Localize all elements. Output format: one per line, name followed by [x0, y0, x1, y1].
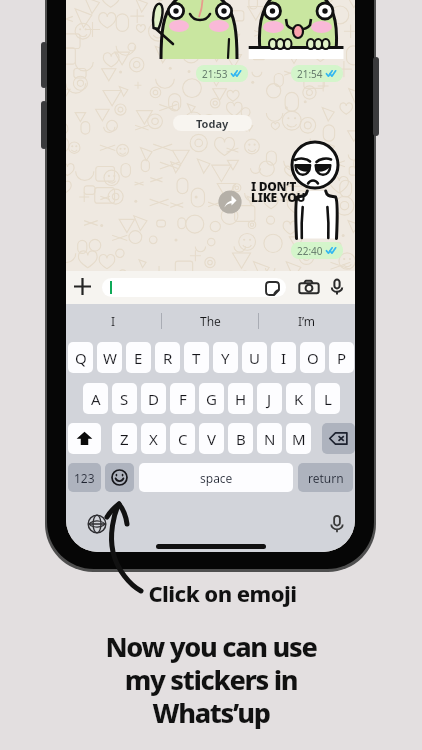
staticText: S: [120, 389, 129, 409]
button[interactable]: H: [228, 383, 253, 414]
staticText: 21:54: [297, 67, 323, 81]
button[interactable]: return: [298, 463, 353, 492]
button[interactable]: M: [286, 423, 311, 454]
button[interactable]: W: [97, 342, 122, 373]
staticText: K: [294, 389, 304, 409]
staticText: P: [337, 348, 347, 368]
button[interactable]: Q: [68, 342, 93, 373]
staticText: F: [179, 389, 187, 409]
staticText: I: [111, 313, 116, 329]
button[interactable]: N: [257, 423, 282, 454]
staticText: The: [200, 313, 221, 329]
button[interactable]: space: [139, 463, 293, 492]
button[interactable]: Voice message: [327, 277, 347, 297]
staticText: I: [281, 348, 287, 368]
staticText: return: [308, 470, 344, 486]
button[interactable]: T: [184, 342, 209, 373]
staticText: L: [324, 389, 332, 409]
button[interactable]: Y: [213, 342, 238, 373]
button[interactable]: X: [141, 423, 166, 454]
staticText: V: [207, 429, 217, 449]
staticText: 22:40: [297, 244, 323, 258]
button[interactable]: D: [141, 383, 166, 414]
staticText: Y: [221, 348, 230, 368]
staticText: space: [200, 470, 233, 486]
staticText: D: [148, 389, 159, 409]
button[interactable]: C: [170, 423, 195, 454]
button[interactable]: P: [329, 342, 354, 373]
button[interactable]: Stickers: [102, 278, 286, 297]
button[interactable]: Stickers: [264, 280, 281, 297]
staticText: I’m: [298, 313, 316, 329]
button[interactable]: E: [126, 342, 151, 373]
staticText: T: [192, 348, 201, 368]
staticText: 123: [74, 470, 95, 486]
button[interactable]: K: [286, 383, 311, 414]
staticText: C: [178, 429, 188, 449]
staticText: B: [236, 429, 246, 449]
staticText: W: [103, 348, 117, 368]
button[interactable]: I: [271, 342, 296, 373]
button[interactable]: I’m: [259, 304, 355, 338]
button[interactable]: G: [199, 383, 224, 414]
staticText: A: [91, 389, 101, 409]
button[interactable]: S: [112, 383, 137, 414]
button[interactable]: V: [199, 423, 224, 454]
staticText: 21:53: [202, 67, 228, 81]
staticText: G: [206, 389, 217, 409]
button[interactable]: A: [83, 383, 108, 414]
button[interactable]: R: [155, 342, 180, 373]
staticText: U: [249, 348, 260, 368]
button[interactable]: B: [228, 423, 253, 454]
button[interactable]: Attach: [69, 273, 95, 299]
staticText: X: [149, 429, 158, 449]
button[interactable]: 123: [68, 463, 101, 492]
staticText: Today: [196, 116, 229, 131]
button[interactable]: Change keyboard language: [86, 513, 108, 535]
staticText: Now you can use my stickers in Whats’up: [105, 628, 317, 731]
button[interactable]: O: [300, 342, 325, 373]
staticText: Q: [75, 348, 87, 368]
button[interactable]: F: [170, 383, 195, 414]
button[interactable]: Dictation: [326, 513, 348, 535]
staticText: M: [292, 429, 306, 449]
staticText: R: [163, 348, 173, 368]
button[interactable]: Camera: [298, 277, 320, 299]
button[interactable]: Emoji: [105, 463, 134, 492]
staticText: O: [307, 348, 319, 368]
staticText: Z: [120, 429, 129, 449]
staticText: E: [134, 348, 143, 368]
button[interactable]: L: [315, 383, 340, 414]
staticText: N: [264, 429, 276, 449]
staticText: Click on emoji: [148, 578, 297, 608]
button[interactable]: I: [66, 304, 161, 338]
staticText: H: [235, 389, 247, 409]
staticText: I DON’T LIKE YOU: [251, 178, 306, 206]
button[interactable]: The: [162, 304, 258, 338]
button[interactable]: J: [257, 383, 282, 414]
button[interactable]: Z: [112, 423, 137, 454]
staticText: J: [267, 389, 272, 409]
button[interactable]: U: [242, 342, 267, 373]
button[interactable]: Shift: [68, 423, 101, 454]
button[interactable]: Backspace: [322, 423, 355, 454]
